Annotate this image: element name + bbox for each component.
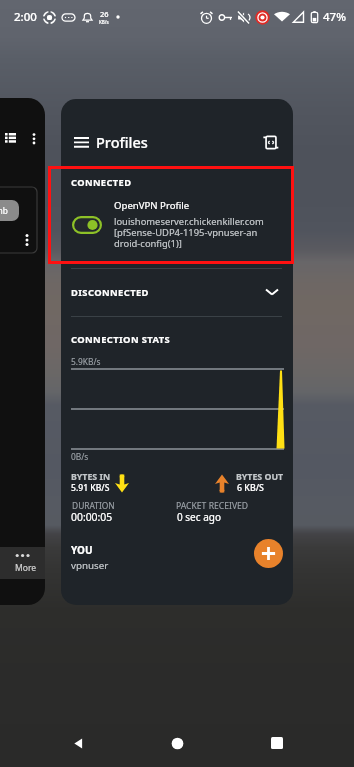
staticText: More (15, 562, 37, 574)
staticText: louishomeserver.chickenkiller.com [pfSen… (114, 215, 264, 250)
button[interactable]: Back (56, 721, 100, 765)
button[interactable]: Home (155, 721, 199, 765)
staticText: DURATION (72, 500, 115, 511)
staticText: mb (0, 205, 8, 216)
staticText: 26 (100, 9, 109, 19)
staticText: 5.91 KB/S (71, 482, 110, 494)
staticText: Profiles (96, 132, 148, 152)
button[interactable]: Disconnect VPN (72, 216, 102, 234)
staticText: OpenVPN Profile (114, 199, 190, 212)
button[interactable]: Import configuration (257, 129, 283, 155)
staticText: KB/s (99, 19, 109, 25)
staticText: BYTES OUT (236, 471, 284, 483)
staticText: CONNECTION STATS (71, 333, 171, 346)
button[interactable]: Add profile (254, 539, 283, 568)
staticText: PACKET RECEIVED (176, 500, 249, 512)
staticText: DISCONNECTED (71, 286, 149, 299)
staticText: 2:00 (14, 9, 37, 25)
staticText: 5.9KB/s (71, 356, 101, 367)
button[interactable]: More (0, 547, 45, 579)
staticText: 6 KB/S (237, 482, 264, 494)
staticText: YOU (71, 543, 93, 557)
staticText: 0 sec ago (177, 510, 221, 524)
staticText: 00:00:05 (71, 510, 113, 524)
button[interactable]: Recent apps (255, 721, 299, 765)
staticText: CONNECTED (71, 176, 132, 189)
staticText: 0B/s (71, 451, 89, 462)
staticText: vpnuser (71, 559, 109, 572)
button[interactable]: Expand disconnected profiles (259, 279, 285, 305)
staticText: BYTES IN (71, 471, 111, 483)
button[interactable]: Navigation menu (68, 129, 94, 155)
staticText: 47% (323, 9, 346, 25)
